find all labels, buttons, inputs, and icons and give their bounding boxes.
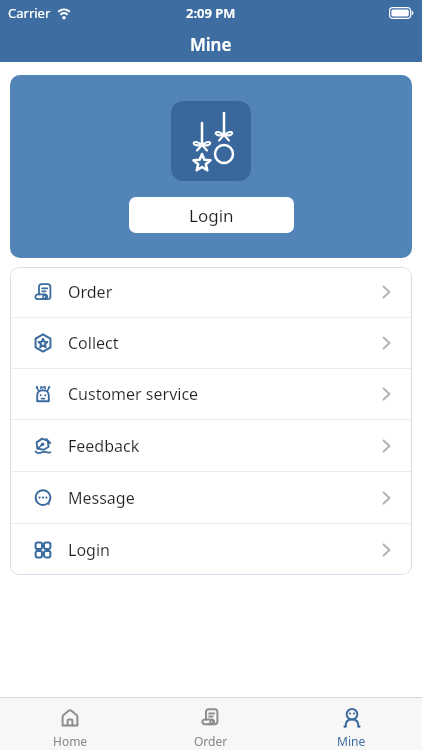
button[interactable]: Feedback (10, 420, 412, 471)
button[interactable]: Login (10, 524, 412, 575)
staticText: Login (68, 539, 110, 561)
button[interactable]: Customer service (10, 369, 412, 419)
button[interactable]: Order (140, 698, 281, 750)
staticText: Message (68, 487, 135, 509)
staticText: Mine (190, 33, 232, 56)
staticText: Mine (337, 733, 366, 749)
staticText: 2:09 PM (186, 4, 236, 22)
staticText: Carrier (8, 4, 51, 22)
staticText: Collect (68, 332, 119, 354)
button[interactable]: Message (10, 472, 412, 523)
staticText: Customer service (68, 383, 199, 405)
button[interactable] (171, 101, 251, 181)
button[interactable]: Order (10, 267, 412, 317)
staticText: Login (189, 204, 234, 227)
staticText: Home (53, 733, 88, 749)
staticText: Order (194, 733, 228, 749)
button[interactable]: Mine (281, 698, 422, 750)
button[interactable]: Home (0, 698, 140, 750)
staticText: Feedback (68, 435, 140, 457)
button[interactable]: Login (129, 197, 294, 233)
button[interactable]: Collect (10, 318, 412, 368)
staticText: Order (68, 281, 113, 303)
